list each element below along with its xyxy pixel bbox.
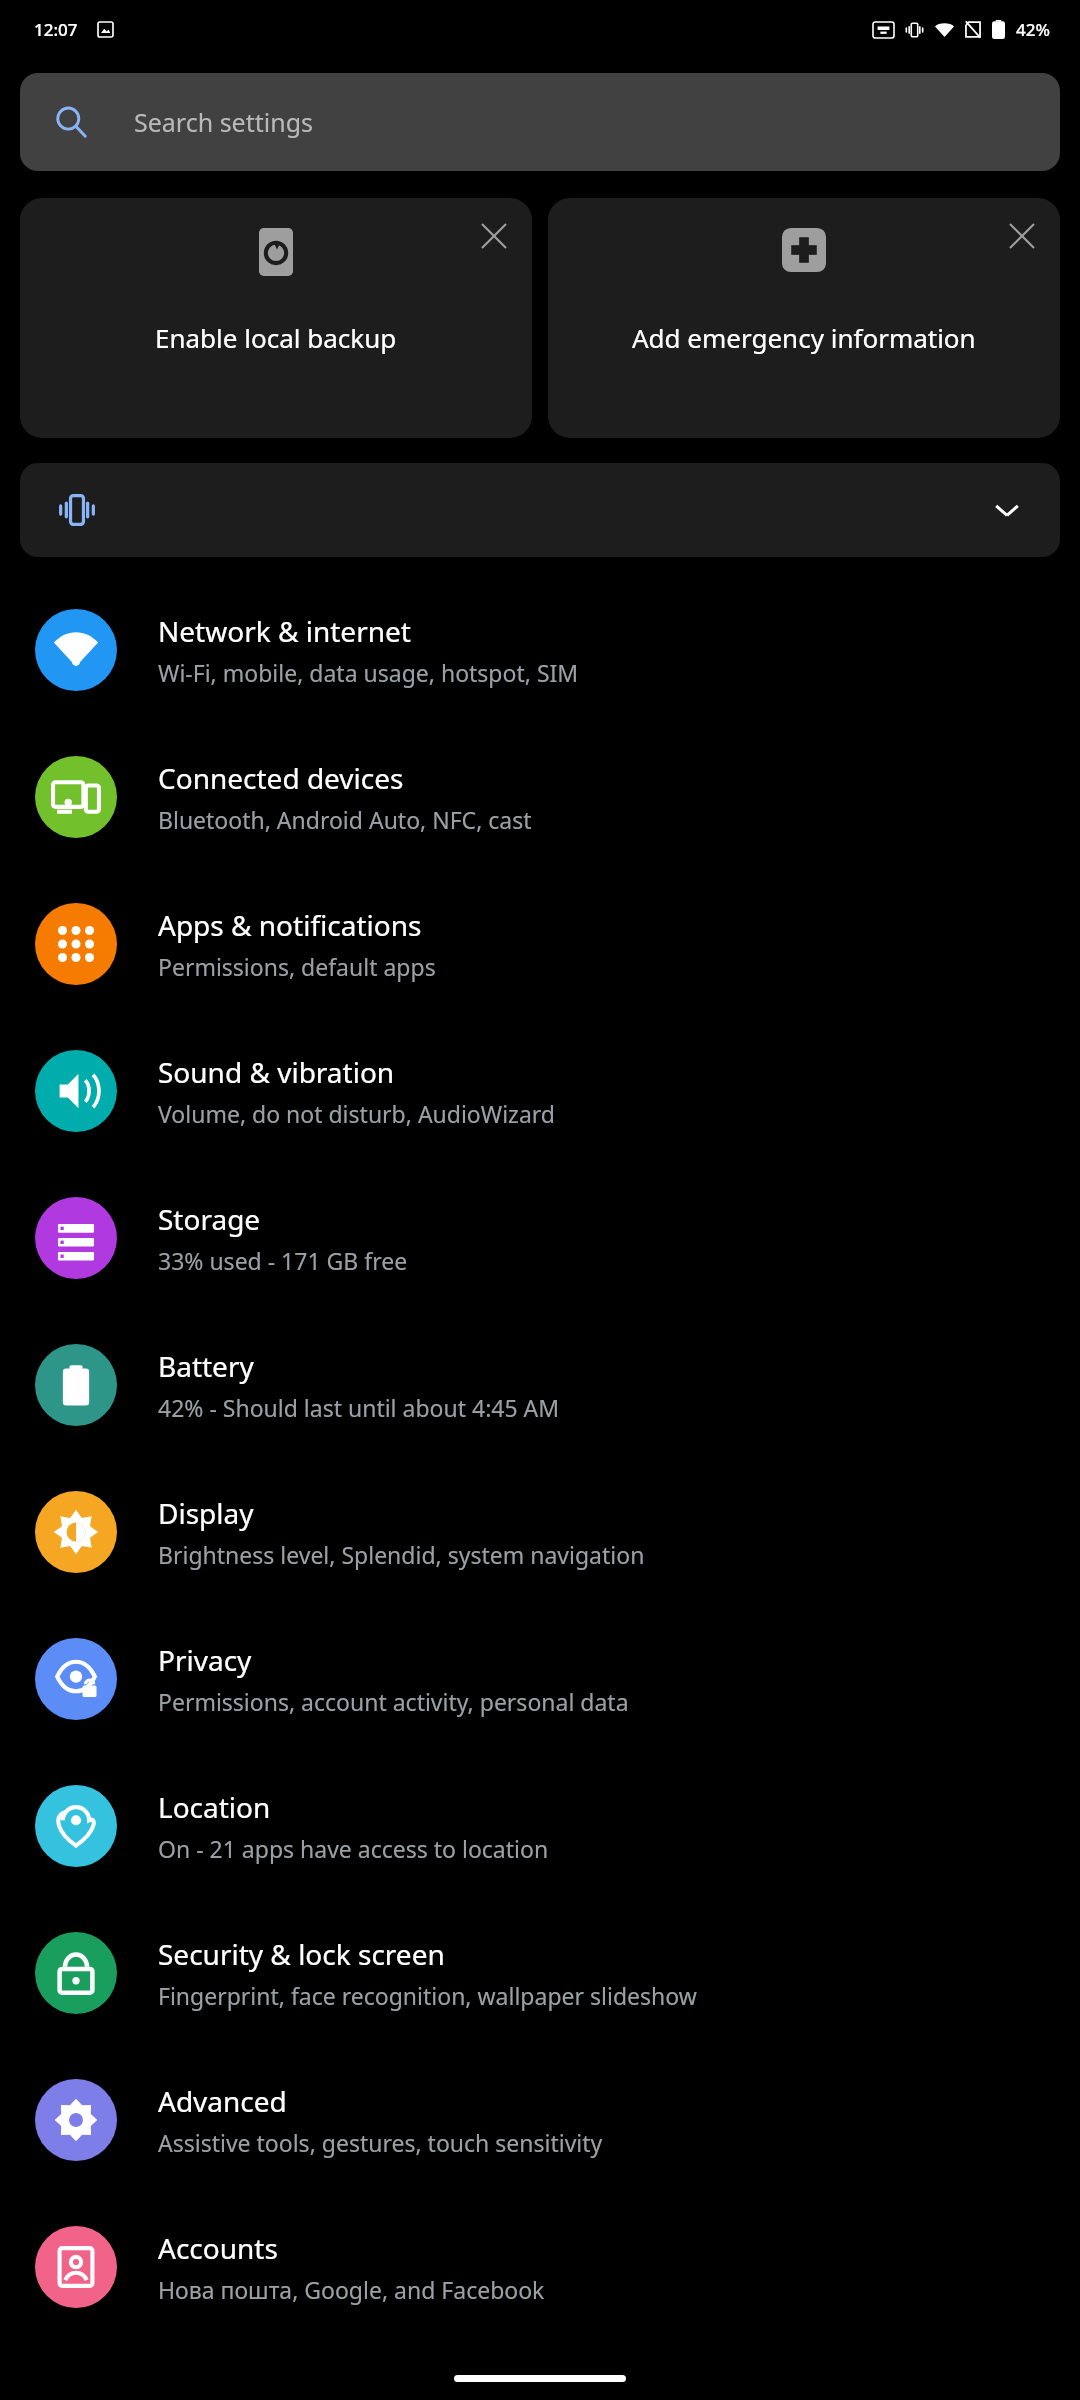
staticText: Security & lock screen (158, 1935, 445, 1973)
button[interactable]: Sound & vibration (0, 1017, 1080, 1164)
button[interactable]: Battery (0, 1311, 1080, 1458)
button[interactable]: Connected devices (0, 723, 1080, 870)
staticText: Enable local backup (155, 320, 397, 355)
staticText: Assistive tools, gestures, touch sensiti… (158, 2127, 603, 2158)
staticText: Permissions, default apps (158, 951, 436, 982)
staticText: 42% (1016, 18, 1050, 41)
staticText: 42% - Should last until about 4:45 AM (158, 1392, 560, 1423)
button[interactable]: Privacy (0, 1605, 1080, 1752)
staticText: Connected devices (158, 759, 404, 797)
button[interactable]: Security & lock screen (0, 1899, 1080, 2046)
button[interactable]: Apps & notifications (0, 870, 1080, 1017)
button[interactable]: Advanced (0, 2046, 1080, 2193)
staticText: Apps & notifications (158, 906, 422, 944)
button[interactable]: Network & internet (0, 576, 1080, 723)
staticText: Brightness level, Splendid, system navig… (158, 1539, 645, 1570)
button[interactable]: Location (0, 1752, 1080, 1899)
staticText: Wi-Fi, mobile, data usage, hotspot, SIM (158, 657, 579, 688)
staticText: Storage (158, 1200, 261, 1238)
staticText: Accounts (158, 2229, 278, 2267)
button[interactable]: Dismiss (548, 198, 1060, 438)
button[interactable]: Search settings (20, 73, 1060, 171)
button[interactable]: Display (0, 1458, 1080, 1605)
staticText: On - 21 apps have access to location (158, 1833, 549, 1864)
staticText: Volume, do not disturb, AudioWizard (158, 1098, 556, 1129)
button[interactable]: Dismiss (20, 198, 532, 438)
staticText: Permissions, account activity, personal … (158, 1686, 629, 1717)
button[interactable]: Storage (0, 1164, 1080, 1311)
staticText: 12:07 (34, 18, 78, 41)
staticText: Bluetooth, Android Auto, NFC, cast (158, 804, 532, 835)
staticText: Display (158, 1494, 254, 1532)
button[interactable]: Vibration settings, expand (20, 463, 1060, 557)
staticText: Fingerprint, face recognition, wallpaper… (158, 1980, 697, 2011)
staticText: Нова пошта, Google, and Facebook (158, 2274, 545, 2305)
staticText: Search settings (134, 105, 314, 139)
button[interactable]: Accounts (0, 2193, 1080, 2340)
button[interactable]: Dismiss (994, 208, 1050, 264)
staticText: Battery (158, 1347, 254, 1385)
staticText: Advanced (158, 2082, 287, 2120)
button[interactable]: Dismiss (466, 208, 522, 264)
staticText: 33% used - 171 GB free (158, 1245, 408, 1276)
staticText: Add emergency information (632, 320, 976, 355)
staticText: Privacy (158, 1641, 252, 1679)
staticText: Location (158, 1788, 271, 1826)
staticText: Sound & vibration (158, 1053, 395, 1091)
staticText: Network & internet (158, 612, 411, 650)
